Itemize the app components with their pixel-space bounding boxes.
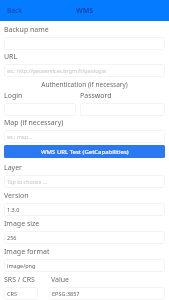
staticText: Map (if necessary) <box>4 118 64 128</box>
staticText: Layer <box>4 163 23 173</box>
staticText: Image size <box>4 219 40 229</box>
button[interactable]: CRS <box>4 287 38 300</box>
staticText: URL <box>4 52 18 62</box>
staticText: Version <box>4 191 29 201</box>
staticText: Authentication (if necessary) <box>4 80 165 89</box>
staticText: Login <box>4 91 80 101</box>
staticText: EPSG:3857 <box>52 290 80 297</box>
button[interactable] <box>4 103 76 116</box>
button[interactable]: Tap to choose ... <box>4 175 165 188</box>
staticText: WMS URL Test (GetCapabilities) <box>41 148 129 156</box>
staticText: Backup name <box>4 25 49 35</box>
staticText: SRS / CRS <box>4 275 51 285</box>
staticText: Password <box>80 91 112 101</box>
button[interactable]: 256 <box>4 231 165 244</box>
staticText: CRS <box>7 290 17 297</box>
staticText: 1.3.0 <box>7 206 20 213</box>
button[interactable]: image/png <box>4 259 165 272</box>
button[interactable] <box>80 103 165 116</box>
staticText: image/png <box>7 262 36 269</box>
button[interactable]: 1.3.0 <box>4 203 165 216</box>
staticText: ex.: map... <box>7 133 33 140</box>
button[interactable]: ex.: http://geoservices.brgm.fr/geologie <box>4 64 165 77</box>
staticText: Image format <box>4 247 50 257</box>
button[interactable]: EPSG:3857 <box>49 287 165 300</box>
staticText: WMS <box>76 6 94 16</box>
staticText: 256 <box>7 234 17 241</box>
staticText: ex.: http://geoservices.brgm.fr/geologie <box>7 67 106 74</box>
button[interactable] <box>4 37 165 50</box>
staticText: Back <box>7 6 22 15</box>
button[interactable]: WMS URL Test (GetCapabilities) <box>4 145 165 158</box>
staticText: Value <box>51 275 70 285</box>
button[interactable]: Back <box>0 3 29 18</box>
button[interactable]: ex.: map... <box>4 130 165 143</box>
staticText: Tap to choose ... <box>7 178 48 185</box>
